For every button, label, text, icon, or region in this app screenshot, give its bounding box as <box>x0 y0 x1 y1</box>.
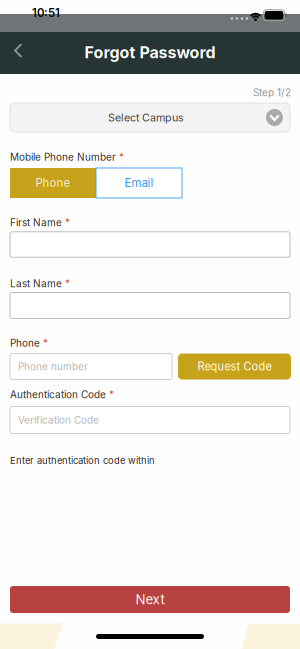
staticText: Phone <box>10 337 40 349</box>
staticText: Select Campus <box>108 111 184 124</box>
staticText: Phone number <box>18 360 88 373</box>
staticText: Phone <box>35 176 70 190</box>
staticText: * <box>65 277 70 290</box>
staticText: * <box>65 216 70 229</box>
button[interactable]: Next <box>10 586 290 613</box>
button[interactable]: Request Code <box>178 353 291 379</box>
staticText: Step 1/2 <box>253 86 291 99</box>
staticText: * <box>109 388 114 401</box>
staticText: Request Code <box>197 360 271 373</box>
staticText: * <box>43 337 48 349</box>
button[interactable]: Back <box>1 33 35 67</box>
staticText: 10:51 <box>32 6 60 20</box>
staticText: Verification Code <box>18 414 99 426</box>
staticText: Last Name <box>10 277 62 290</box>
staticText: First Name <box>10 216 62 229</box>
staticText: Next <box>135 591 164 607</box>
staticText: * <box>119 151 124 163</box>
button[interactable]: Email <box>96 168 182 198</box>
button[interactable]: Select Campus <box>10 103 290 132</box>
staticText: Email <box>124 176 153 190</box>
button[interactable]: Phone <box>10 168 96 198</box>
staticText: Mobile Phone Number <box>10 151 116 163</box>
staticText: Forgot Password <box>84 43 215 62</box>
staticText: Enter authentication code within <box>10 455 155 466</box>
staticText: Authentication Code <box>10 388 106 401</box>
